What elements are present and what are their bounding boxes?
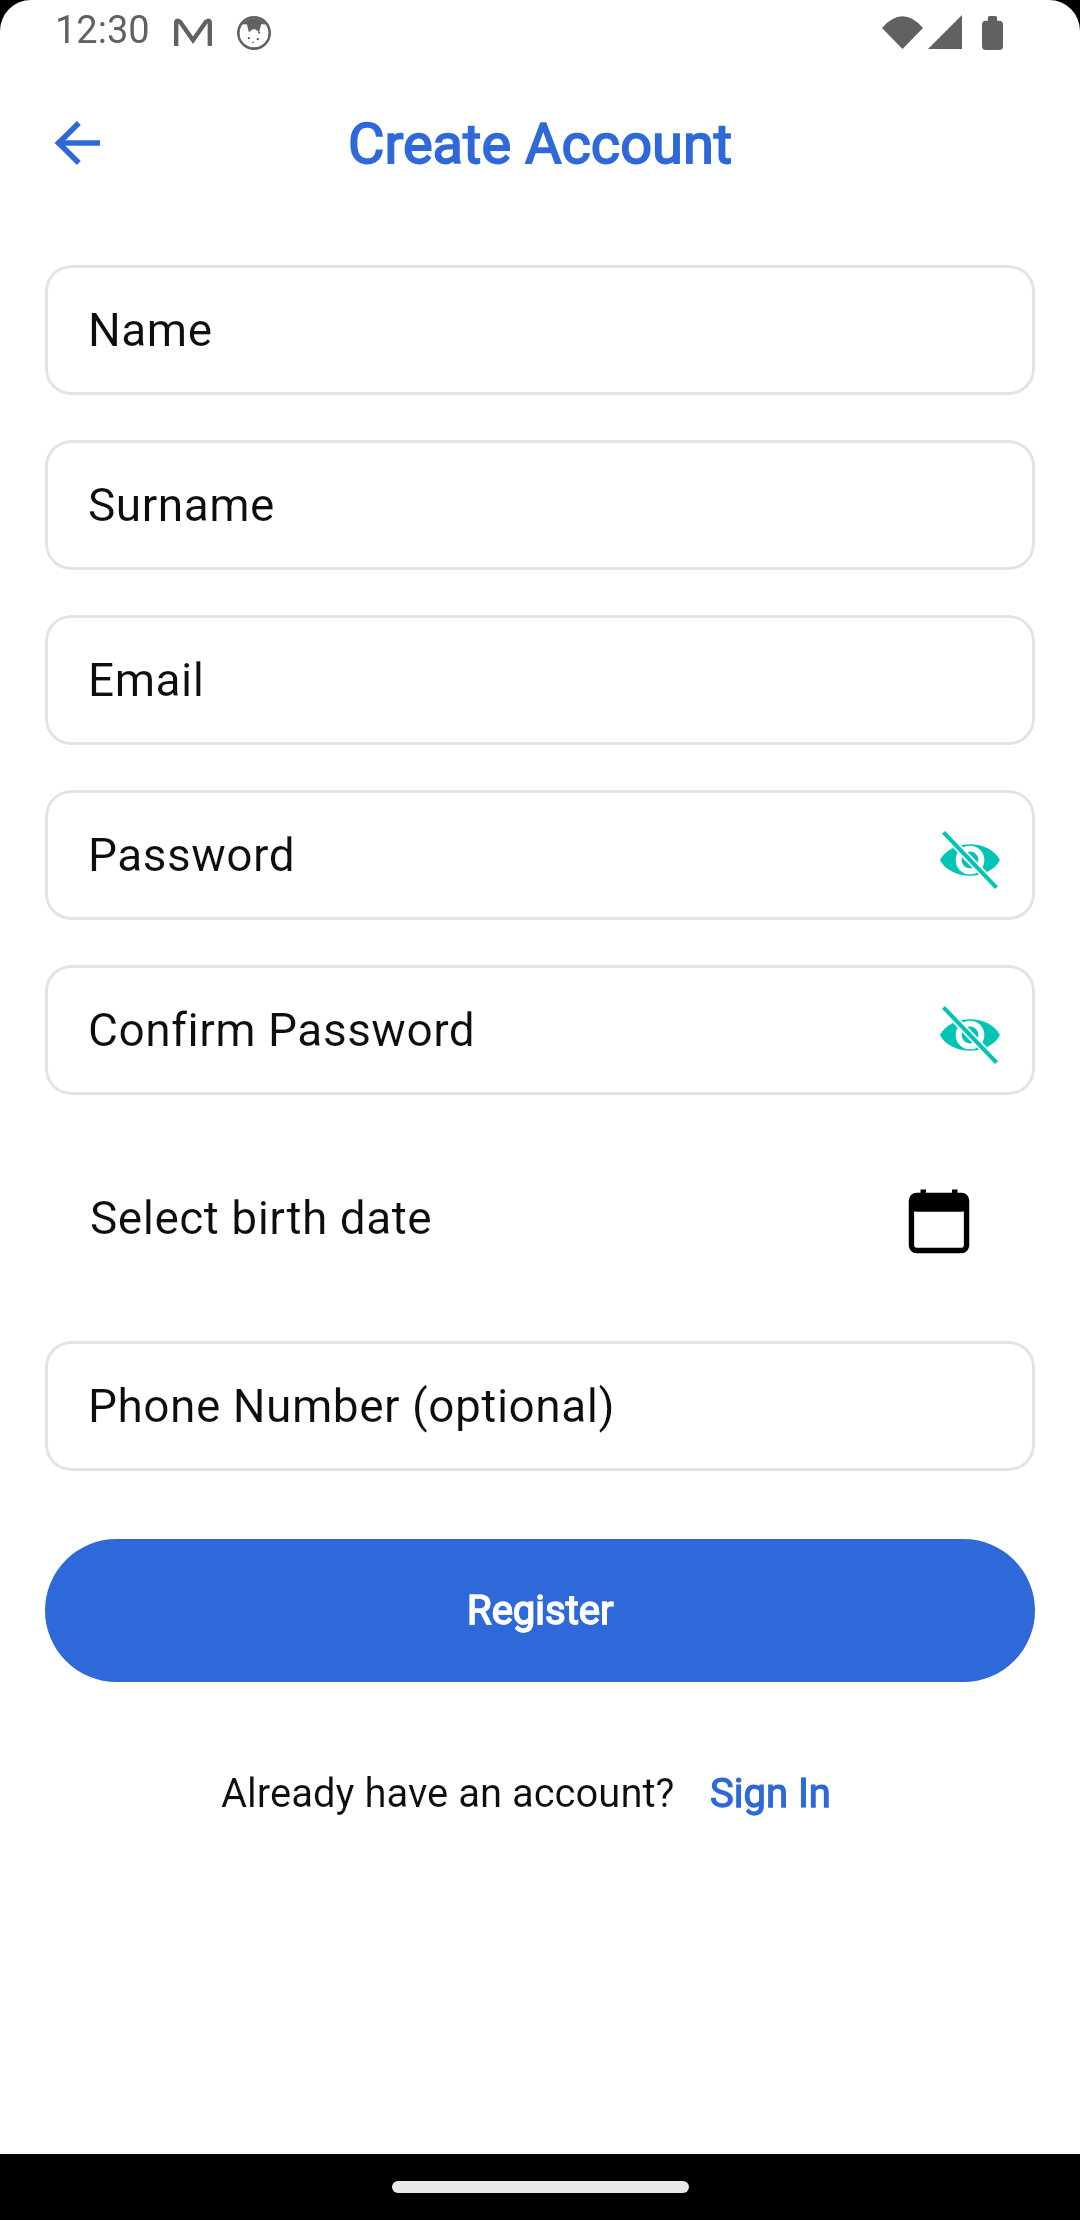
button[interactable]: Toggle password visibility [939, 829, 1001, 891]
staticText: Surname [88, 478, 275, 532]
staticText: Email [88, 653, 205, 707]
button[interactable]: Phone Number (optional) [45, 1341, 1035, 1471]
staticText: Select birth date [90, 1191, 433, 1245]
staticText: Create Account [348, 111, 733, 177]
staticText: Register [467, 1587, 614, 1634]
button[interactable]: Email [45, 615, 1035, 745]
button[interactable]: Register [45, 1539, 1035, 1682]
button[interactable]: Back [40, 105, 116, 181]
staticText: Already have an account? [221, 1770, 675, 1817]
staticText: Name [88, 303, 213, 357]
button[interactable]: Toggle password visibility [939, 1004, 1001, 1066]
button[interactable]: Select birth date [45, 1095, 1035, 1341]
button[interactable]: Surname [45, 440, 1035, 570]
staticText: Phone Number (optional) [88, 1379, 615, 1433]
button[interactable]: Name [45, 265, 1035, 395]
staticText: Confirm Password [88, 1003, 476, 1057]
staticText: 12:30 [55, 8, 150, 53]
button[interactable]: Password [45, 790, 1035, 920]
staticText: Password [88, 828, 296, 882]
button[interactable]: Sign In [710, 1770, 831, 1817]
staticText: Sign In [710, 1770, 831, 1817]
button[interactable]: Confirm Password [45, 965, 1035, 1095]
